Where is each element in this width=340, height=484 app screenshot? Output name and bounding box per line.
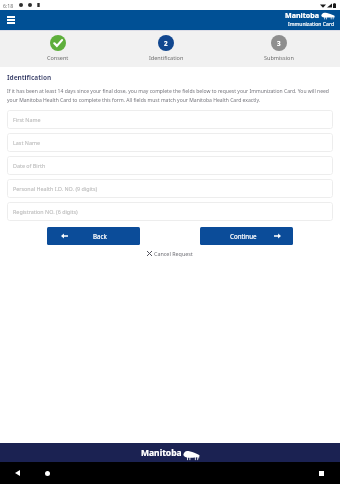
staticText: Manitoba	[285, 10, 319, 20]
staticText: Identification	[7, 73, 52, 82]
staticText: Personal Health I.D. NO. (9 digits)	[13, 185, 98, 192]
button[interactable]: 3	[217, 31, 340, 67]
staticText: 2	[164, 39, 168, 47]
button[interactable]: Last Name	[7, 133, 333, 152]
button[interactable]: Recent apps	[313, 465, 329, 481]
button[interactable]: Cancel Request	[7, 250, 333, 257]
staticText: 3	[277, 39, 281, 47]
button[interactable]: Back	[9, 465, 25, 481]
button[interactable]: Home	[39, 465, 55, 481]
button[interactable]: First Name	[7, 110, 333, 129]
button[interactable]: Registration NO. (6 digits)	[7, 202, 333, 221]
button[interactable]: Continue	[200, 227, 293, 245]
staticText: Date of Birth	[13, 162, 46, 169]
staticText: Consent	[47, 54, 69, 61]
button[interactable]: Date of Birth	[7, 156, 333, 175]
button[interactable]: Back	[47, 227, 140, 245]
staticText: Identification	[149, 54, 184, 61]
staticText: Back	[93, 232, 107, 240]
button[interactable]: Consent	[0, 31, 115, 67]
staticText: Cancel Request	[154, 250, 193, 257]
staticText: If it has been at least 14 days since yo…	[7, 88, 333, 103]
button[interactable]: Open navigation menu	[4, 13, 18, 27]
button[interactable]: Personal Health I.D. NO. (9 digits)	[7, 179, 333, 198]
staticText: Immunization Card	[288, 21, 335, 28]
staticText: Manitoba	[141, 447, 182, 459]
staticText: Submission	[264, 54, 294, 61]
staticText: 6:18	[3, 2, 14, 9]
staticText: Last Name	[13, 139, 40, 146]
staticText: Continue	[230, 232, 257, 240]
staticText: Registration NO. (6 digits)	[13, 208, 78, 215]
button[interactable]: 2	[115, 31, 217, 67]
staticText: First Name	[13, 116, 41, 123]
